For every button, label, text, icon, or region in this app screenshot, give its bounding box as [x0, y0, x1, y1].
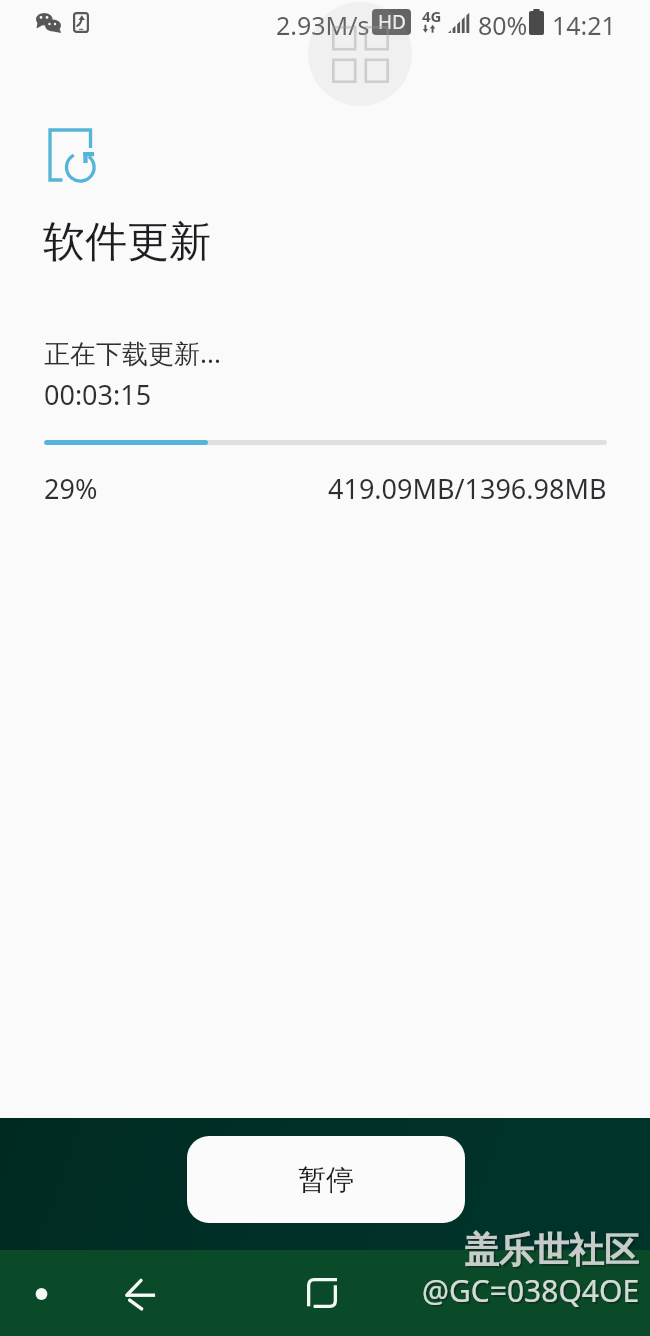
staticText: 80%	[478, 8, 528, 42]
button[interactable]: Back	[100, 1250, 182, 1336]
staticText: 盖乐世社区	[466, 1230, 641, 1274]
staticText: 2.93M/s	[276, 8, 370, 42]
staticText: 盖乐世社区	[464, 1228, 639, 1272]
staticText: 软件更新	[43, 216, 211, 269]
staticText: @GC=038Q4OE	[424, 1272, 642, 1313]
staticText: 00:03:15	[44, 376, 152, 413]
staticText: HD	[378, 9, 406, 35]
staticText: 暂停	[298, 1162, 354, 1197]
button[interactable]: 暂停	[187, 1136, 465, 1223]
button[interactable]: Assistive menu	[308, 2, 412, 106]
staticText: 29%	[44, 470, 98, 507]
staticText: 正在下载更新...	[44, 335, 221, 371]
button[interactable]: Home	[0, 1250, 82, 1336]
staticText: @GC=038Q4OE	[422, 1270, 640, 1311]
staticText: 4G	[422, 6, 442, 26]
staticText: 419.09MB/1396.98MB	[328, 470, 607, 507]
staticText: 14:21	[552, 8, 616, 42]
button[interactable]: Recents	[281, 1250, 363, 1336]
